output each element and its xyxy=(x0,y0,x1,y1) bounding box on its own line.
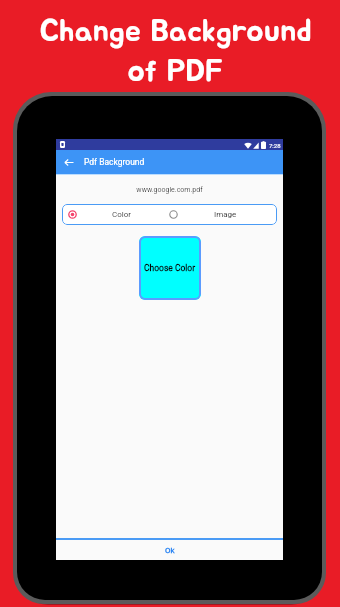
button[interactable]: Color xyxy=(62,210,169,219)
staticText: Choose Color xyxy=(144,263,196,273)
staticText: of PDF xyxy=(127,55,223,87)
staticText: Image xyxy=(214,210,237,219)
staticText: 7:28 xyxy=(269,142,281,149)
staticText: Pdf Background xyxy=(84,157,145,167)
staticText: Change Background xyxy=(39,15,312,47)
button[interactable]: Ok xyxy=(56,540,283,560)
button[interactable]: Choose Color xyxy=(139,236,201,300)
button[interactable]: Back xyxy=(61,154,77,170)
staticText: www.google.com.pdf xyxy=(56,186,283,194)
staticText: Ok xyxy=(165,546,175,555)
staticText: Color xyxy=(112,210,131,219)
button[interactable]: Image xyxy=(169,210,277,219)
